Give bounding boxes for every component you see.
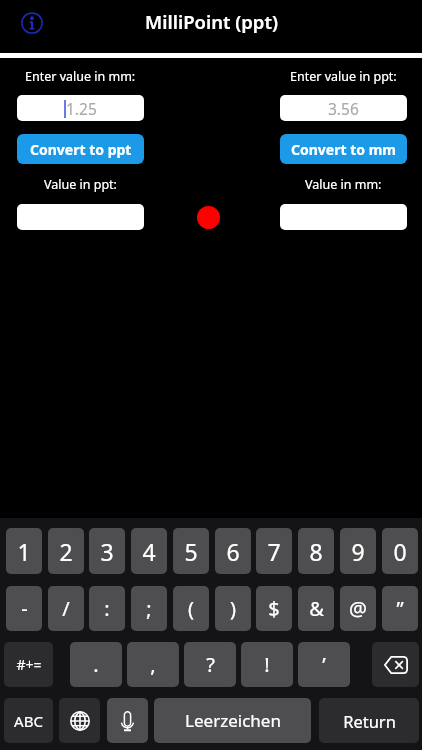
staticText: 2 [59, 536, 73, 567]
staticText: Enter value in ppt: [290, 68, 397, 85]
button[interactable]: Info [18, 9, 46, 37]
staticText: 0 [393, 536, 407, 567]
button[interactable]: ! [241, 642, 293, 687]
button[interactable]: 5 [173, 528, 209, 574]
button[interactable]: , [127, 642, 179, 687]
button[interactable]: 3.56 [280, 95, 407, 121]
button[interactable]: Change language [59, 698, 100, 743]
button[interactable]: Voice input [107, 698, 148, 743]
button[interactable]: 0 [382, 528, 418, 574]
button[interactable]: $ [256, 586, 292, 631]
staticText: $ [268, 595, 280, 622]
staticText: ; [146, 595, 152, 622]
button[interactable]: ’ [298, 642, 350, 687]
button[interactable]: 9 [340, 528, 376, 574]
button[interactable]: 6 [215, 528, 251, 574]
staticText: & [309, 595, 324, 622]
button[interactable]: 1 [6, 528, 42, 574]
staticText: 1 [17, 536, 31, 567]
staticText: ) [230, 595, 236, 622]
staticText: Leerzeichen [185, 709, 281, 732]
staticText: Convert to ppt [30, 140, 132, 159]
staticText: 9 [351, 536, 365, 567]
button[interactable]: Return [319, 698, 419, 743]
button[interactable]: - [6, 586, 42, 631]
button[interactable]: Convert to mm [280, 134, 407, 164]
button[interactable]: 4 [131, 528, 167, 574]
staticText: 3.56 [328, 98, 359, 119]
button[interactable]: ” [382, 586, 418, 631]
staticText: 4 [142, 536, 156, 567]
button[interactable]: : [89, 586, 125, 631]
staticText: Enter value in mm: [25, 68, 136, 85]
staticText: Convert to mm [291, 140, 396, 159]
staticText: Value in mm: [305, 176, 382, 193]
staticText: @ [349, 595, 367, 622]
staticText: Value in ppt: [44, 176, 117, 193]
staticText: , [150, 651, 156, 678]
button[interactable]: ABC [4, 698, 53, 743]
button[interactable]: ( [173, 586, 209, 631]
staticText: #+= [16, 655, 42, 674]
staticText: ? [206, 651, 215, 678]
staticText: MilliPoint (ppt) [145, 9, 278, 34]
button[interactable]: Delete [372, 642, 419, 687]
button[interactable]: 1.25 [17, 95, 144, 121]
staticText: Return [343, 710, 396, 732]
staticText: . [93, 651, 99, 678]
button[interactable]: / [48, 586, 84, 631]
button[interactable]: #+= [4, 642, 53, 687]
button[interactable] [17, 204, 144, 230]
button[interactable]: . [70, 642, 122, 687]
staticText: / [62, 595, 70, 622]
button[interactable]: ; [131, 586, 167, 631]
staticText: - [21, 595, 28, 622]
staticText: ” [396, 595, 404, 622]
staticText: 6 [226, 536, 240, 567]
button[interactable]: 2 [48, 528, 84, 574]
staticText: 7 [267, 536, 281, 567]
staticText: 8 [309, 536, 323, 567]
staticText: ! [264, 651, 270, 678]
staticText: ’ [322, 651, 326, 678]
button[interactable]: Leerzeichen [154, 698, 311, 743]
button[interactable]: ) [215, 586, 251, 631]
button[interactable]: Convert to ppt [17, 134, 144, 164]
staticText: 5 [184, 536, 198, 567]
button[interactable]: @ [340, 586, 376, 631]
button[interactable]: 3 [89, 528, 125, 574]
button[interactable]: ? [184, 642, 236, 687]
button[interactable] [280, 204, 407, 230]
staticText: ( [188, 595, 194, 622]
staticText: 3 [100, 536, 114, 567]
staticText: 1.25 [66, 98, 97, 119]
staticText: : [104, 595, 110, 622]
button[interactable]: & [298, 586, 334, 631]
staticText: ABC [14, 711, 43, 731]
button[interactable]: 7 [256, 528, 292, 574]
button[interactable]: 8 [298, 528, 334, 574]
